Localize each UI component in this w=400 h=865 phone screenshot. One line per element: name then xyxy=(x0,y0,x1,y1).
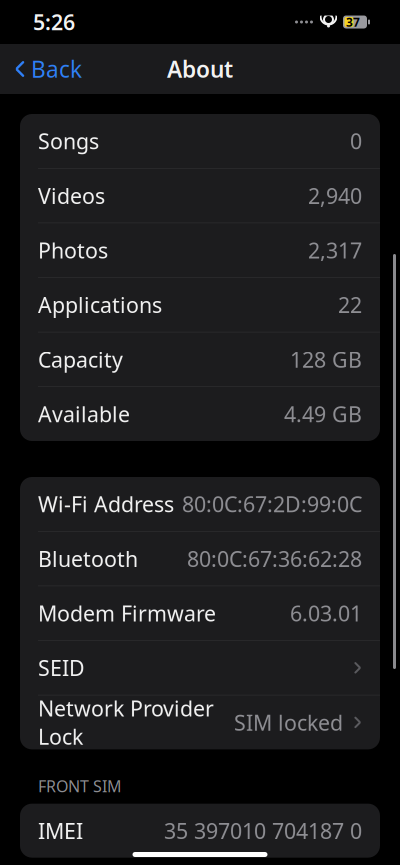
staticText: 6.03.01 xyxy=(290,599,362,627)
staticText: Modem Firmware xyxy=(38,599,216,627)
button[interactable]: Capacity xyxy=(20,332,380,386)
staticText: Capacity xyxy=(38,345,123,373)
staticText: 5:26 xyxy=(33,8,75,36)
staticText: IMEI xyxy=(38,816,83,845)
button[interactable]: Applications xyxy=(20,278,380,332)
button[interactable]: Videos xyxy=(20,169,380,223)
staticText: 4.49 GB xyxy=(284,400,362,428)
staticText: 2,940 xyxy=(308,181,362,210)
staticText: Videos xyxy=(38,181,105,210)
staticText: Network Provider Lock xyxy=(38,694,214,751)
staticText: 35 397010 704187 0 xyxy=(164,816,362,845)
button[interactable]: SEID xyxy=(20,641,380,695)
staticText: Wi-Fi Address xyxy=(38,490,174,518)
button[interactable]: Back xyxy=(0,46,82,92)
button[interactable]: Songs xyxy=(20,114,380,168)
staticText: 0 xyxy=(350,127,362,155)
staticText: 22 xyxy=(338,291,362,319)
staticText: 80:0C:67:36:62:28 xyxy=(187,544,362,573)
staticText: SEID xyxy=(38,654,85,682)
staticText: Photos xyxy=(38,236,108,264)
button[interactable]: Photos xyxy=(20,223,380,277)
staticText: Back xyxy=(31,54,82,84)
staticText: 2,317 xyxy=(308,236,362,264)
staticText: SIM locked xyxy=(234,708,343,736)
staticText: 80:0C:67:2D:99:0C xyxy=(182,490,362,518)
staticText: 128 GB xyxy=(290,345,362,373)
staticText: Songs xyxy=(38,127,99,155)
staticText: FRONT SIM xyxy=(38,775,122,797)
button[interactable]: Available xyxy=(20,387,380,441)
staticText: Applications xyxy=(38,291,162,319)
staticText: Available xyxy=(38,400,130,428)
button[interactable]: Wi-Fi Address xyxy=(20,477,380,531)
button[interactable]: Bluetooth xyxy=(20,532,380,586)
button[interactable]: IMEI xyxy=(20,804,380,858)
staticText: 37 xyxy=(346,14,360,30)
button[interactable]: Modem Firmware xyxy=(20,586,380,640)
staticText: About xyxy=(167,54,233,84)
staticText: Bluetooth xyxy=(38,544,138,573)
button[interactable]: Network Provider Lock xyxy=(20,695,380,749)
